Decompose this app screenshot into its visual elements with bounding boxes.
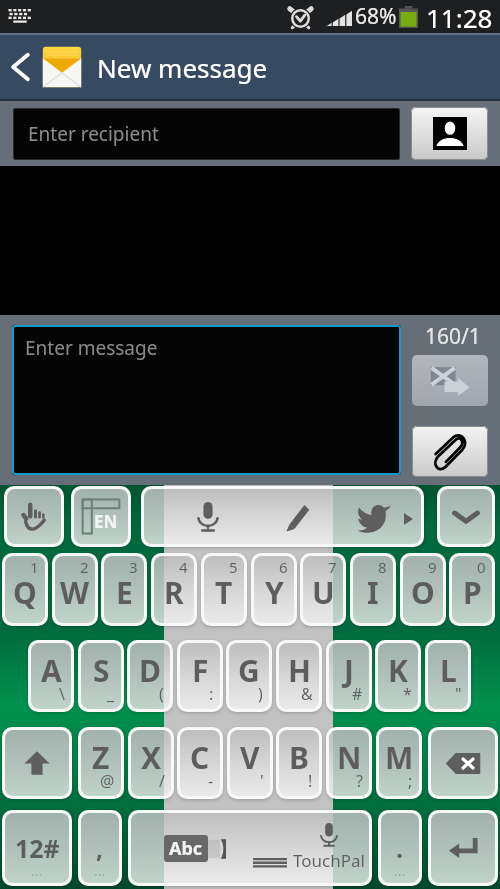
button[interactable]: Voice input bbox=[144, 489, 421, 544]
button[interactable]: Voice input bbox=[144, 489, 421, 544]
button[interactable]: U bbox=[303, 556, 343, 623]
staticText: 0 bbox=[477, 557, 486, 577]
button[interactable]: Enter recipient bbox=[13, 108, 400, 160]
staticText: 4 bbox=[179, 557, 188, 577]
button[interactable]: K bbox=[378, 643, 418, 709]
staticText: 1 bbox=[30, 557, 39, 577]
button[interactable]: S bbox=[81, 643, 121, 709]
button[interactable]: F bbox=[180, 643, 220, 709]
button[interactable]: Twitter bbox=[332, 489, 417, 544]
button[interactable]: Enter message bbox=[12, 325, 401, 475]
button[interactable]: N bbox=[329, 730, 369, 796]
button[interactable]: E bbox=[104, 556, 144, 623]
button[interactable]: Attach bbox=[412, 426, 488, 477]
staticText: . bbox=[396, 831, 404, 865]
button[interactable]: . bbox=[381, 813, 419, 883]
button[interactable]: M bbox=[379, 730, 419, 796]
button[interactable]: O bbox=[403, 556, 443, 623]
staticText: M bbox=[385, 737, 414, 778]
button[interactable]: Language bbox=[74, 489, 128, 544]
button[interactable]: L bbox=[428, 643, 468, 709]
button[interactable]: K bbox=[378, 643, 418, 709]
button[interactable]: Back bbox=[0, 33, 500, 101]
button[interactable]: H bbox=[279, 643, 319, 709]
button[interactable]: Delete bbox=[431, 730, 495, 796]
button[interactable]: Gesture input bbox=[7, 489, 61, 544]
button[interactable]: B bbox=[279, 730, 319, 796]
button[interactable]: V bbox=[230, 730, 270, 796]
button[interactable]: Hide keyboard bbox=[440, 489, 492, 544]
button[interactable]: C bbox=[180, 730, 220, 796]
button[interactable]: Q bbox=[5, 556, 45, 623]
button[interactable]: Gesture input bbox=[7, 489, 61, 544]
staticText: K bbox=[388, 650, 408, 691]
button[interactable]: Q bbox=[5, 556, 45, 623]
staticText: 12# bbox=[15, 831, 60, 865]
button[interactable]: E bbox=[104, 556, 144, 623]
button[interactable]: S bbox=[81, 643, 121, 709]
button[interactable]: Twitter bbox=[332, 489, 417, 544]
button[interactable]: I bbox=[353, 556, 393, 623]
button[interactable]: R bbox=[154, 556, 194, 623]
button[interactable]: M bbox=[379, 730, 419, 796]
button[interactable]: Shift bbox=[5, 730, 69, 796]
staticText: * bbox=[403, 683, 412, 705]
staticText: U bbox=[312, 572, 335, 613]
button[interactable]: C bbox=[180, 730, 220, 796]
button[interactable]: Shift bbox=[5, 730, 69, 796]
button[interactable]: D bbox=[130, 643, 170, 709]
button[interactable]: F bbox=[180, 643, 220, 709]
button[interactable]: 12# bbox=[5, 813, 69, 883]
button[interactable]: , bbox=[81, 813, 119, 883]
button[interactable]: P bbox=[452, 556, 492, 623]
button[interactable]: Voice input bbox=[163, 489, 253, 544]
button[interactable]: G bbox=[229, 643, 269, 709]
button[interactable]: Hide keyboard bbox=[440, 489, 492, 544]
staticText: Abc bbox=[169, 836, 203, 861]
staticText: A bbox=[41, 650, 62, 691]
button[interactable]: Handwriting bbox=[252, 489, 342, 544]
button[interactable]: A bbox=[31, 643, 71, 709]
button[interactable]: Enter bbox=[431, 813, 495, 883]
button[interactable]: R bbox=[154, 556, 194, 623]
button[interactable]: W bbox=[55, 556, 95, 623]
button[interactable]: T bbox=[204, 556, 244, 623]
button[interactable]: D bbox=[130, 643, 170, 709]
button[interactable]: Enter bbox=[431, 813, 495, 883]
button[interactable]: J bbox=[329, 643, 369, 709]
button[interactable]: Space bbox=[131, 813, 369, 883]
button[interactable]: L bbox=[428, 643, 468, 709]
button[interactable]: Handwriting bbox=[252, 489, 342, 544]
staticText: 11:28 bbox=[426, 0, 493, 33]
button[interactable]: W bbox=[55, 556, 95, 623]
button[interactable]: Y bbox=[254, 556, 294, 623]
staticText: - bbox=[208, 770, 214, 792]
button[interactable]: Delete bbox=[431, 730, 495, 796]
button[interactable]: G bbox=[229, 643, 269, 709]
button[interactable]: J bbox=[329, 643, 369, 709]
button[interactable]: X bbox=[131, 730, 171, 796]
button[interactable]: Choose contact bbox=[411, 107, 488, 160]
button[interactable]: Language bbox=[74, 489, 128, 544]
button[interactable]: , bbox=[81, 813, 119, 883]
button[interactable]: B bbox=[279, 730, 319, 796]
button[interactable]: V bbox=[230, 730, 270, 796]
staticText: M bbox=[385, 737, 414, 778]
button[interactable]: Z bbox=[81, 730, 121, 796]
button[interactable]: U bbox=[303, 556, 343, 623]
button[interactable]: A bbox=[31, 643, 71, 709]
button[interactable]: 12# bbox=[5, 813, 69, 883]
button[interactable]: Voice input bbox=[163, 489, 253, 544]
button[interactable]: O bbox=[403, 556, 443, 623]
button[interactable]: N bbox=[329, 730, 369, 796]
button[interactable]: P bbox=[452, 556, 492, 623]
button[interactable]: Space bbox=[131, 813, 369, 883]
button[interactable]: H bbox=[279, 643, 319, 709]
button[interactable]: Send message bbox=[412, 355, 488, 406]
button[interactable]: Y bbox=[254, 556, 294, 623]
button[interactable]: Z bbox=[81, 730, 121, 796]
button[interactable]: T bbox=[204, 556, 244, 623]
button[interactable]: X bbox=[131, 730, 171, 796]
button[interactable]: I bbox=[353, 556, 393, 623]
button[interactable]: . bbox=[381, 813, 419, 883]
